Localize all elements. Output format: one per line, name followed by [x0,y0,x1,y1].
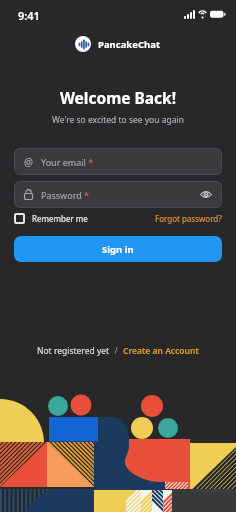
button[interactable]: Not registered yet [0,345,236,357]
staticText: Password * [41,189,90,201]
button[interactable]: Remember me [14,213,222,224]
staticText: Sign in [102,243,134,256]
button[interactable]: @ [14,148,222,175]
staticText: We're so excited to see you again [0,114,236,126]
staticText: Remember me [32,213,88,224]
staticText: 9:41 [18,8,40,23]
staticText: Create an Account [123,345,199,357]
staticText: Welcome Back! [0,87,236,108]
staticText: / [110,345,123,357]
staticText: Your email * [41,156,94,168]
button[interactable]: Forgot password? [155,213,222,224]
staticText: PancakeChat [98,38,161,51]
staticText: Not registered yet [37,345,110,357]
staticText: @ [24,155,33,169]
button[interactable]: Password * [14,181,222,208]
button[interactable]: Sign in [14,236,222,262]
